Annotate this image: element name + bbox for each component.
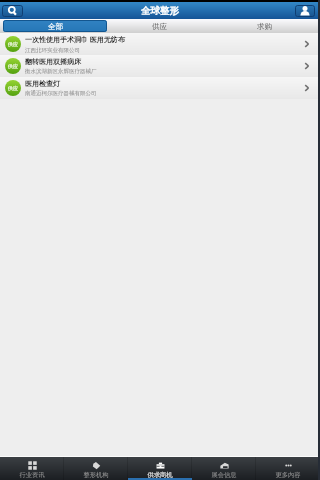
staticText: 更多内容 (275, 471, 301, 479)
button[interactable]: 供应 (0, 33, 320, 55)
button[interactable]: 全部 (3, 20, 107, 32)
button[interactable]: 供求商机 (128, 457, 192, 480)
staticText: 全球整形 (141, 5, 179, 17)
staticText: 供应 (8, 85, 18, 91)
button[interactable]: 展会信息 (192, 457, 256, 480)
button[interactable]: 行业资讯 (0, 457, 64, 480)
button[interactable]: 供应 (0, 55, 320, 77)
staticText: 展会信息 (211, 471, 237, 479)
staticText: 南通迈柯尔医疗器械有限公司 (25, 90, 97, 97)
staticText: 供应 (8, 41, 18, 47)
button[interactable]: 求购 (212, 20, 317, 32)
staticText: 供应 (8, 63, 18, 69)
button[interactable]: 供应 (0, 77, 320, 99)
staticText: 求购 (257, 22, 272, 31)
staticText: 供求商机 (147, 471, 173, 479)
button[interactable]: 供应 (107, 20, 212, 32)
button[interactable]: Search (2, 5, 23, 17)
staticText: 供应 (152, 22, 167, 31)
button[interactable]: 更多内容 (256, 457, 320, 480)
staticText: 整形机构 (83, 471, 109, 479)
staticText: 全部 (48, 22, 63, 31)
staticText: 翻转医用双摇病床 (25, 57, 81, 66)
staticText: 江西北环实业有限公司 (25, 47, 80, 54)
button[interactable]: 整形机构 (64, 457, 128, 480)
button[interactable]: Account (295, 5, 315, 17)
staticText: 一次性使用手术洞巾 医用无纺布 (25, 35, 125, 45)
staticText: 行业资讯 (19, 471, 45, 479)
staticText: 衡水滨湖新区永辉医疗器械厂 (25, 68, 97, 75)
staticText: 医用检查灯 (25, 79, 60, 88)
